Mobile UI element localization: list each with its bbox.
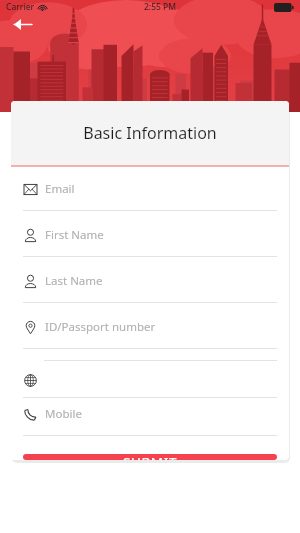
staticText: 2:55 PM (144, 1, 177, 13)
button[interactable]: First Name (11, 222, 289, 268)
staticText: First Name (45, 227, 104, 243)
button[interactable]: Email (11, 176, 289, 222)
button[interactable]: SUBMIT (23, 454, 277, 460)
staticText: ID/Passport number (45, 319, 156, 335)
button[interactable]: Last Name (11, 268, 289, 314)
button[interactable]: ID/Passport number (11, 314, 289, 360)
staticText: Carrier (6, 1, 35, 13)
staticText: Mobile (45, 406, 82, 422)
button[interactable]: Mobile (11, 401, 289, 447)
staticText: Basic Information (83, 122, 217, 144)
staticText: SUBMIT (123, 454, 177, 460)
button[interactable]: Back (8, 10, 36, 38)
button[interactable] (11, 360, 289, 401)
staticText: Email (45, 181, 75, 197)
staticText: Last Name (45, 273, 103, 289)
